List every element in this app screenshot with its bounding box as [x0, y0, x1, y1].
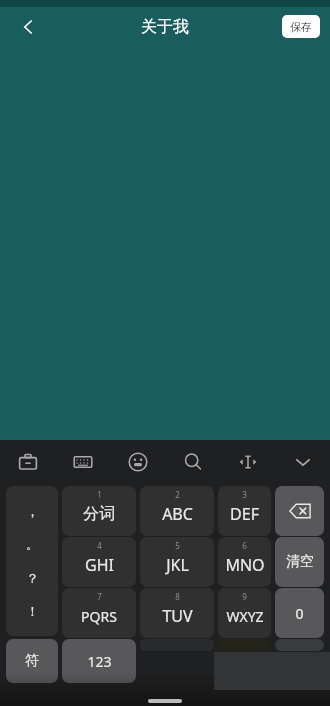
- staticText: 4: [97, 540, 102, 551]
- staticText: 7: [97, 591, 102, 602]
- button[interactable]: 3: [218, 486, 271, 536]
- button[interactable]: Clipboard: [0, 440, 55, 484]
- button[interactable]: 9: [218, 588, 271, 638]
- staticText: ！: [26, 603, 39, 619]
- button[interactable]: 2: [140, 486, 214, 536]
- staticText: 保存: [290, 20, 312, 34]
- staticText: TUV: [162, 605, 193, 627]
- staticText: JKL: [166, 554, 189, 576]
- staticText: PQRS: [81, 607, 117, 626]
- staticText: 关于我: [141, 17, 189, 37]
- button[interactable]: 1: [62, 486, 136, 536]
- button[interactable]: 6: [218, 537, 271, 587]
- staticText: 5: [175, 540, 180, 551]
- staticText: 8: [175, 591, 180, 602]
- staticText: ABC: [162, 503, 193, 525]
- staticText: 1: [97, 489, 102, 500]
- button[interactable]: Collapse keyboard: [275, 440, 330, 484]
- staticText: 9: [242, 591, 247, 602]
- staticText: 6: [242, 540, 247, 551]
- staticText: 清空: [286, 553, 314, 571]
- button[interactable]: 7: [62, 588, 136, 638]
- staticText: 。: [26, 536, 39, 552]
- staticText: 符: [25, 652, 39, 670]
- staticText: DEF: [230, 503, 259, 525]
- staticText: 3: [242, 489, 247, 500]
- button[interactable]: 保存: [282, 15, 320, 38]
- staticText: ，: [26, 503, 39, 519]
- staticText: 123: [87, 652, 112, 671]
- button[interactable]: Emoji: [110, 440, 165, 484]
- button[interactable]: Backspace: [275, 486, 324, 536]
- button[interactable]: 符: [6, 639, 58, 683]
- staticText: 2: [175, 489, 180, 500]
- button[interactable]: Move cursor: [220, 440, 275, 484]
- button[interactable]: 0: [275, 588, 324, 638]
- button[interactable]: 123: [62, 639, 136, 683]
- button[interactable]: ，: [6, 486, 58, 636]
- staticText: GHI: [85, 554, 114, 576]
- button[interactable]: 5: [140, 537, 214, 587]
- staticText: 0: [295, 604, 304, 623]
- staticText: MNO: [225, 554, 265, 576]
- staticText: WXYZ: [226, 607, 264, 626]
- button[interactable]: Back: [6, 5, 50, 49]
- button[interactable]: Search: [165, 440, 220, 484]
- button[interactable]: 4: [62, 537, 136, 587]
- staticText: ？: [26, 570, 39, 586]
- button[interactable]: Keyboard layout: [55, 440, 110, 484]
- button[interactable]: 8: [140, 588, 214, 638]
- staticText: 分词: [83, 504, 115, 524]
- button[interactable]: 清空: [275, 537, 324, 587]
